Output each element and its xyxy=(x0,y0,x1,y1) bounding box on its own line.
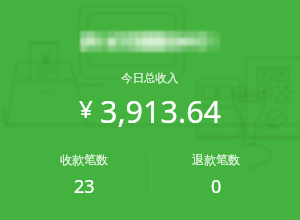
staticText: 今日总收入 xyxy=(121,71,179,85)
staticText: 0 xyxy=(211,174,222,199)
button[interactable]: 退款笔数 xyxy=(150,152,282,199)
staticText: 收款笔数 xyxy=(60,152,108,167)
staticText: 退款笔数 xyxy=(192,152,240,167)
staticText: 23 xyxy=(74,174,95,199)
staticText: 3,913.64 xyxy=(100,90,222,132)
button[interactable]: 收款笔数 xyxy=(18,152,150,199)
staticText: ¥ xyxy=(79,92,93,125)
